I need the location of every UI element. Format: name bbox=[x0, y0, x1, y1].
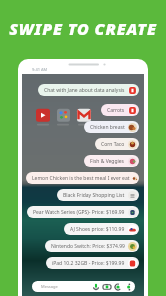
staticText: Nintendo Switch: Price: $374.99 bbox=[51, 243, 125, 250]
staticText: iPad 10.2 32GB - Price: $199.99 bbox=[52, 260, 125, 267]
staticText: 9:41 AM bbox=[32, 67, 48, 72]
button[interactable]: Lemon Chicken is the best meal I ever ea… bbox=[26, 172, 139, 184]
button[interactable]: Switch camera bbox=[112, 281, 123, 292]
staticText: AJ Shoes price: $110.99 bbox=[70, 226, 125, 233]
button[interactable]: Carrots bbox=[101, 104, 139, 116]
button[interactable]: Message bbox=[32, 281, 135, 292]
button[interactable]: Fish & Veggies bbox=[84, 155, 139, 167]
staticText: Carrots bbox=[107, 107, 125, 114]
button[interactable]: Corn Taco bbox=[95, 138, 139, 150]
staticText: Pear Watch Series (GPS)- Price: $169.99 bbox=[33, 209, 125, 216]
staticText: Chicken breast bbox=[90, 124, 125, 131]
button[interactable]: Pear Watch Series (GPS)- Price: $169.99 bbox=[27, 206, 139, 218]
button[interactable]: AJ Shoes price: $110.99 bbox=[64, 223, 139, 235]
button[interactable]: Camera bbox=[101, 281, 112, 292]
staticText: Fish & Veggies bbox=[90, 158, 125, 165]
staticText: Black Friday Shopping List bbox=[63, 192, 125, 199]
button[interactable]: Chat with Jane about data analysis bbox=[38, 84, 139, 96]
button[interactable]: Nintendo Switch: Price: $374.99 bbox=[45, 240, 139, 252]
staticText: Corn Taco bbox=[101, 141, 125, 148]
button[interactable]: More options bbox=[123, 281, 134, 292]
staticText: Message bbox=[41, 284, 58, 289]
staticText: Chat with Jane about data analysis bbox=[44, 87, 125, 94]
staticText: SWIPE TO CREATE bbox=[0, 18, 166, 40]
button[interactable]: Voice message bbox=[90, 281, 101, 292]
button[interactable]: Chicken breast bbox=[84, 121, 139, 133]
button[interactable]: iPad 10.2 32GB - Price: $199.99 bbox=[46, 257, 139, 269]
staticText: Lemon Chicken is the best meal I ever ea… bbox=[32, 175, 130, 182]
button[interactable]: Black Friday Shopping List bbox=[57, 189, 139, 201]
